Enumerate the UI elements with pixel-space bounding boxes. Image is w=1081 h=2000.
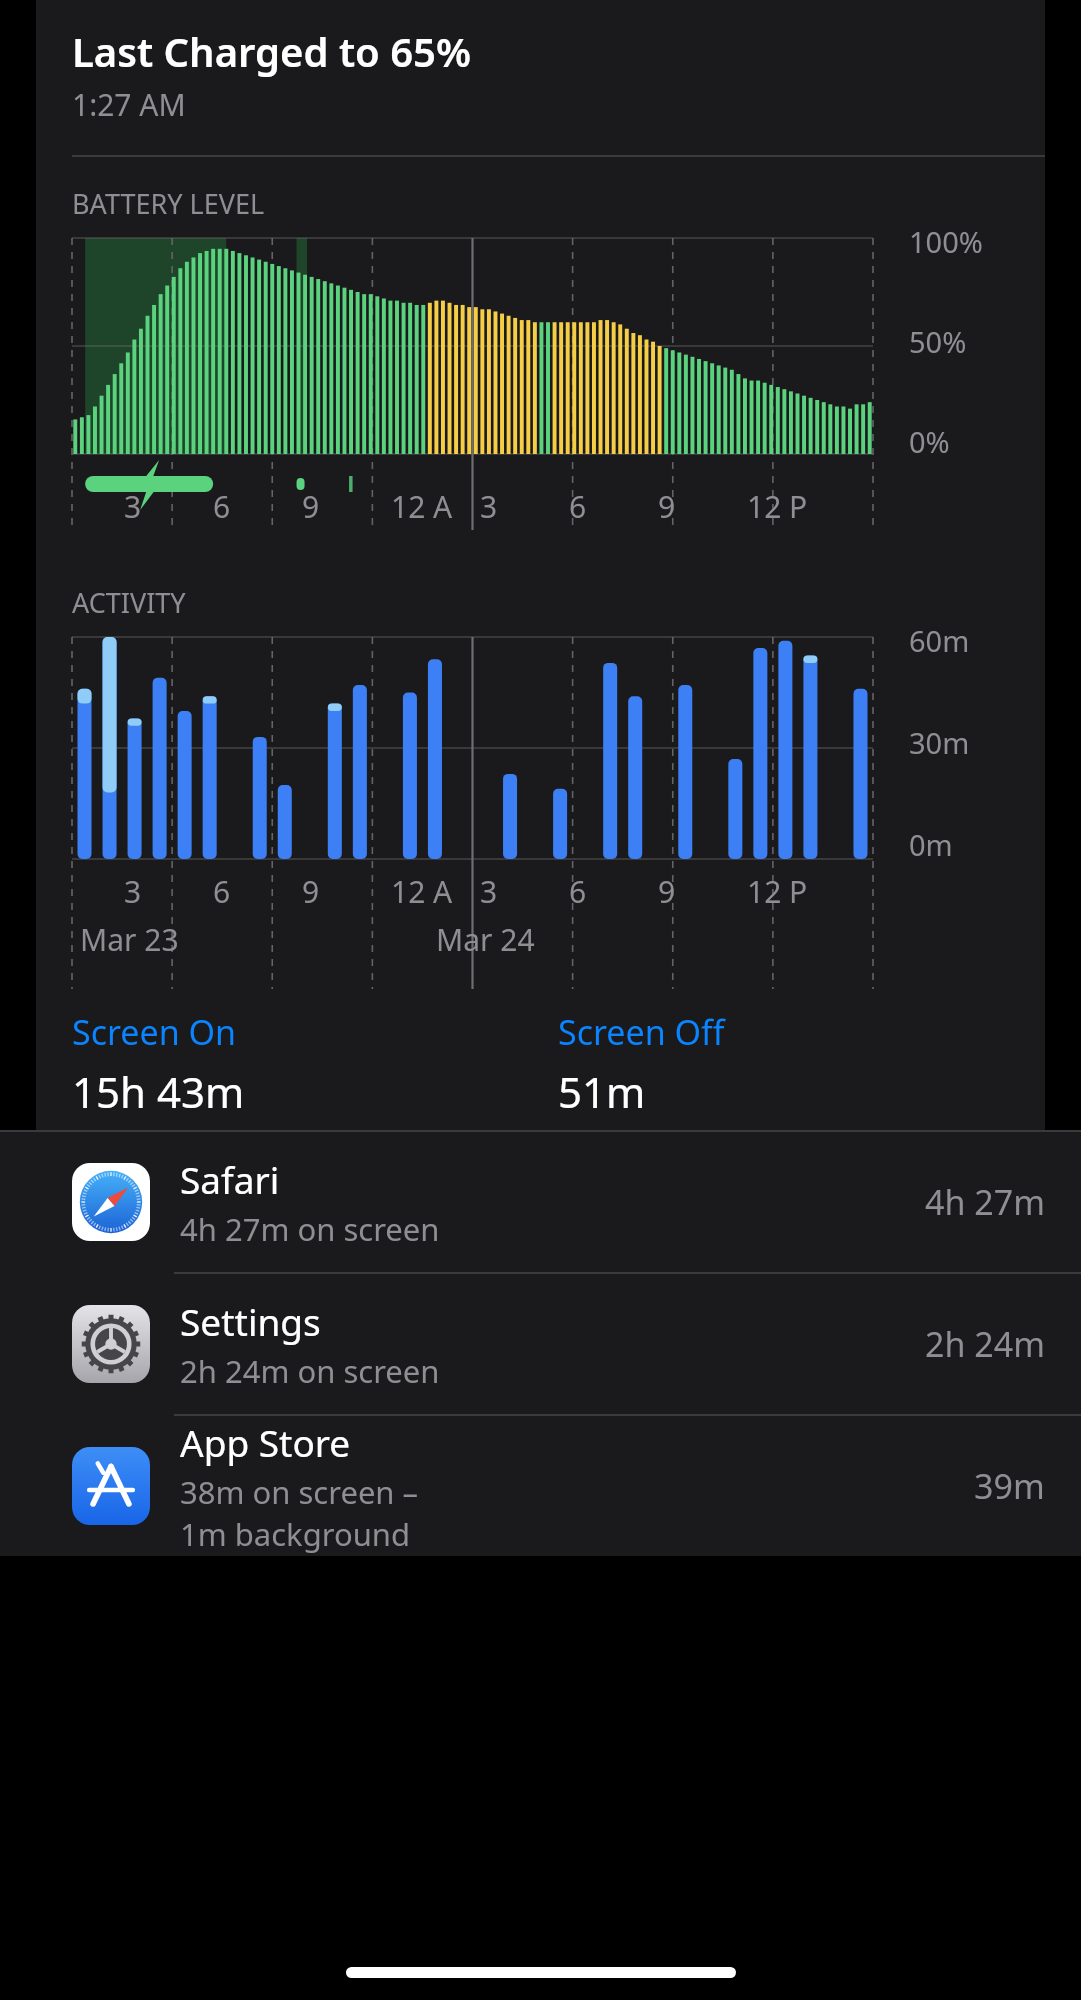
staticText: 60m — [909, 621, 970, 660]
staticText: 2h 24m — [925, 1321, 1045, 1367]
staticText: ACTIVITY BY APP — [72, 1176, 283, 1213]
staticText: 6 — [213, 871, 231, 912]
staticText: 3 — [480, 871, 498, 912]
button[interactable]: Settings — [0, 1274, 1081, 1414]
staticText: 15h 43m — [72, 1063, 245, 1120]
staticText: 2h 24m on screen — [180, 1350, 440, 1392]
staticText: 1m background — [180, 1513, 411, 1555]
staticText: 12 P — [747, 486, 808, 527]
staticText: 4h 27m — [925, 1179, 1045, 1225]
staticText: App Store — [180, 1417, 351, 1467]
staticText: SHOW BATTERY USAGE — [727, 1176, 1019, 1213]
staticText: Screen Off — [558, 1009, 725, 1055]
staticText: 6 — [213, 486, 231, 527]
staticText: 0% — [909, 422, 950, 461]
staticText: 3 — [124, 871, 142, 912]
staticText: 30m — [909, 723, 970, 762]
staticText: 6 — [569, 871, 587, 912]
staticText: Screen On — [72, 1009, 237, 1055]
staticText: 9 — [302, 871, 320, 912]
staticText: 12 A — [391, 871, 453, 912]
staticText: Settings — [180, 1296, 321, 1346]
staticText: BATTERY LEVEL — [72, 185, 265, 222]
button[interactable]: SHOW BATTERY USAGE — [727, 1176, 1019, 1213]
staticText: 38m on screen – — [180, 1471, 419, 1513]
staticText: 3 — [124, 486, 142, 527]
staticText: 12 A — [391, 486, 453, 527]
staticText: 9 — [302, 486, 320, 527]
staticText: 12 P — [747, 871, 808, 912]
staticText: 39m — [974, 1463, 1045, 1509]
staticText: 9 — [658, 871, 676, 912]
button[interactable]: Safari — [0, 1132, 1081, 1272]
staticText: Mar 24 — [436, 919, 535, 960]
staticText: Last Charged to 65% — [72, 24, 471, 78]
staticText: Mar 23 — [80, 919, 179, 960]
staticText: 1:27 AM — [72, 84, 186, 125]
staticText: 4h 27m on screen — [180, 1208, 440, 1250]
staticText: 100% — [909, 222, 983, 261]
staticText: 9 — [658, 486, 676, 527]
staticText: 3 — [480, 486, 498, 527]
staticText: 6 — [569, 486, 587, 527]
staticText: Safari — [180, 1154, 280, 1204]
button[interactable]: App Store — [0, 1416, 1081, 1556]
staticText: ACTIVITY — [72, 584, 186, 621]
staticText: 51m — [558, 1063, 646, 1120]
staticText: 0m — [909, 825, 953, 864]
staticText: 50% — [909, 322, 967, 361]
